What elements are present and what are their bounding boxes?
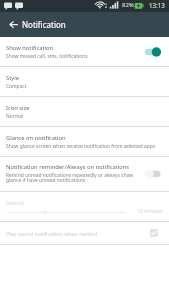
staticText: Compact bbox=[6, 83, 27, 90]
staticText: Show missed call, sms, notifications bbox=[6, 53, 88, 60]
staticText: Play sound notification when remind bbox=[6, 230, 98, 237]
button[interactable]: Show notification bbox=[0, 37, 169, 66]
staticText: Show glance screen when receive notifica… bbox=[6, 143, 156, 150]
staticText: Remind unread notifications repeatedly o… bbox=[6, 172, 139, 184]
staticText: 13:13 bbox=[149, 1, 165, 9]
button[interactable]: Glance on notification bbox=[0, 127, 169, 156]
staticText: Icon size bbox=[6, 104, 30, 112]
button[interactable]: Interval bbox=[0, 192, 169, 221]
button[interactable]: Notification reminder/Always on notifica… bbox=[0, 157, 169, 191]
staticText: 82% bbox=[122, 1, 134, 9]
staticText: 10 minutes bbox=[137, 208, 163, 215]
staticText: Glance on notification bbox=[6, 134, 66, 142]
button[interactable]: Toggle on bbox=[143, 42, 167, 62]
button[interactable]: Icon size bbox=[0, 97, 169, 126]
button[interactable]: Toggle off bbox=[143, 164, 167, 184]
button[interactable]: Back bbox=[0, 12, 24, 37]
button[interactable]: Play sound notification when remind bbox=[145, 224, 163, 242]
staticText: Interval bbox=[6, 200, 24, 207]
staticText: Notification bbox=[22, 19, 66, 30]
staticText: Show notification bbox=[6, 44, 54, 52]
button[interactable]: Style bbox=[0, 67, 169, 96]
button[interactable]: Play sound notification when remind bbox=[0, 222, 169, 244]
staticText: Notification reminder/Always on notifica… bbox=[6, 163, 130, 171]
staticText: Normal bbox=[6, 113, 24, 120]
staticText: Style bbox=[6, 74, 19, 82]
